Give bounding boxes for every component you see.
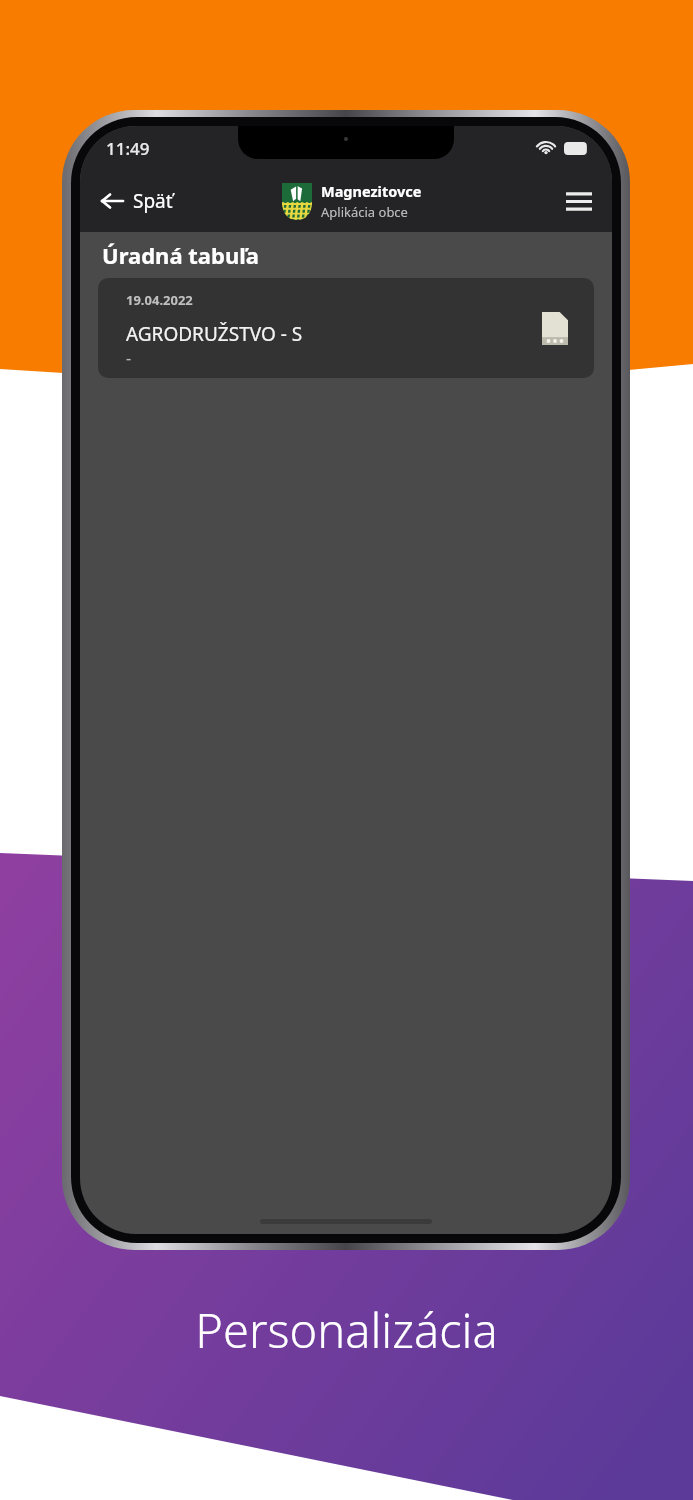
staticText: 19.04.2022: [126, 291, 193, 309]
other: Open document: [542, 312, 568, 345]
staticText: -: [126, 347, 132, 369]
staticText: AGRODRUŽSTVO - S: [126, 321, 303, 347]
button[interactable]: Späť: [80, 178, 187, 224]
button[interactable]: Menu: [546, 178, 612, 225]
staticText: Späť: [133, 188, 173, 214]
staticText: Personalizácia: [195, 1298, 498, 1362]
staticText: Aplikácia obce: [321, 203, 408, 221]
staticText: Úradná tabuľa: [102, 240, 259, 270]
staticText: 11:49: [106, 137, 150, 160]
staticText: Magnezitovce: [321, 181, 422, 201]
button[interactable]: 19.04.2022: [98, 278, 594, 378]
